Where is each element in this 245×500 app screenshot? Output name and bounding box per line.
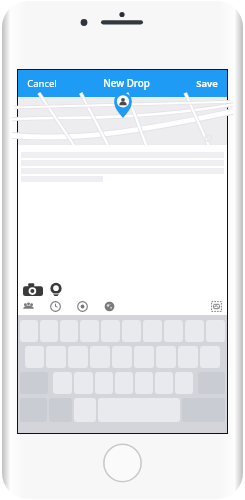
- button[interactable]: Cancel: [25, 73, 59, 94]
- button[interactable]: Time: [50, 301, 61, 312]
- button[interactable]: People: [23, 301, 34, 312]
- button[interactable]: Idea: [49, 282, 63, 298]
- button[interactable]: Save: [194, 73, 220, 94]
- button[interactable]: Camera: [23, 282, 43, 298]
- button[interactable]: Record: [77, 301, 88, 312]
- button[interactable]: Globe: [104, 301, 115, 312]
- button[interactable]: Drop location pin: [18, 97, 227, 145]
- button[interactable]: Scan: [211, 301, 222, 312]
- staticText: Cancel: [27, 77, 57, 90]
- other: Drop location pin: [112, 91, 134, 121]
- staticText: Save: [196, 77, 218, 90]
- staticText: New Drop: [103, 77, 150, 90]
